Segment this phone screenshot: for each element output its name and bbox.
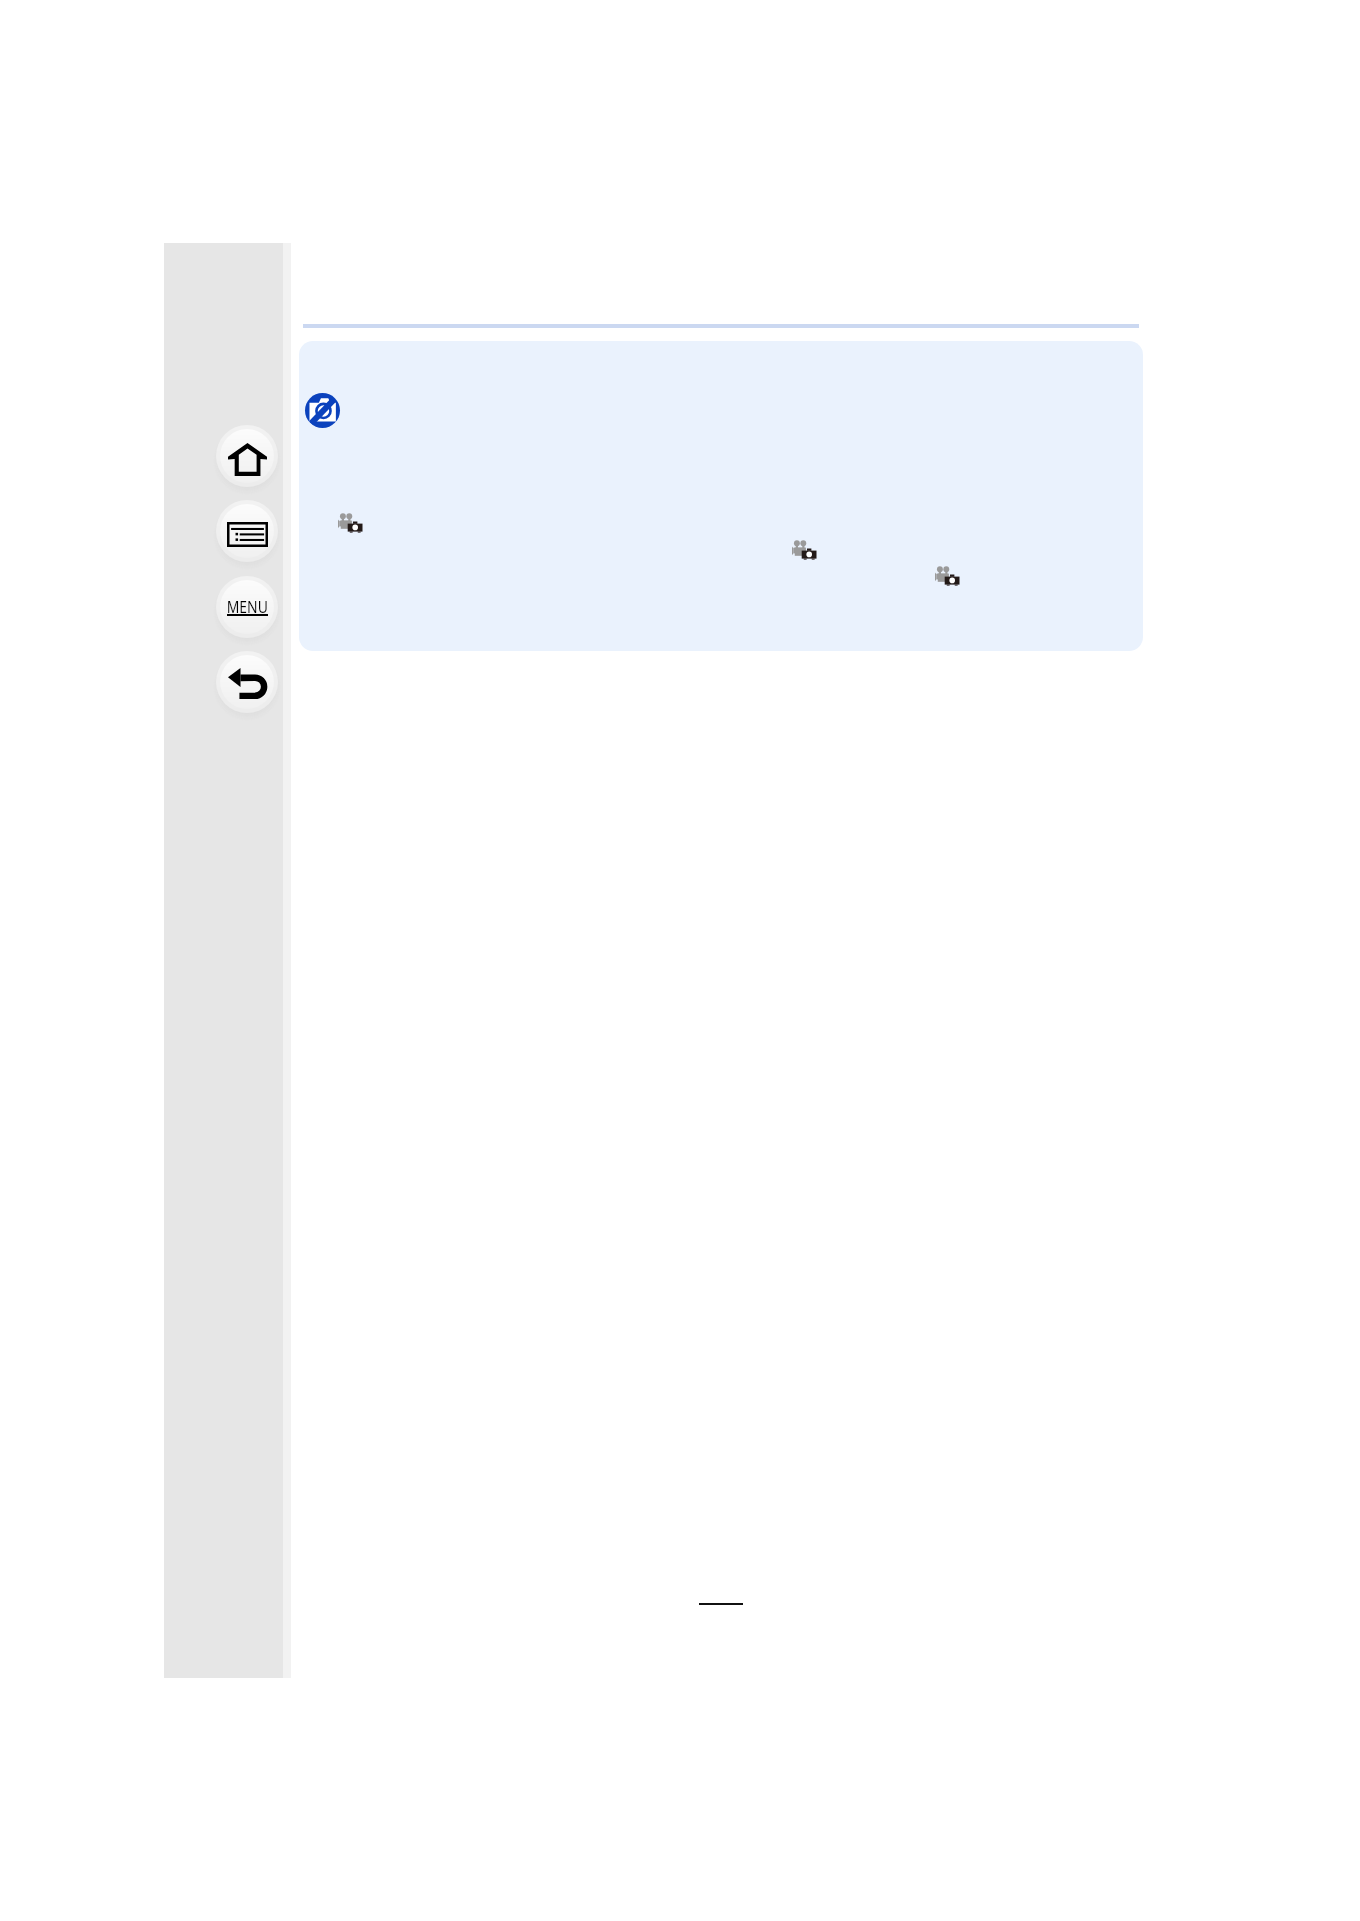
- button[interactable]: Menu: [213, 573, 281, 641]
- staticText: MENU: [227, 595, 268, 617]
- button[interactable]: Table of contents: [213, 497, 281, 565]
- button[interactable]: Home: [213, 422, 281, 490]
- button[interactable]: Back: [213, 648, 281, 716]
